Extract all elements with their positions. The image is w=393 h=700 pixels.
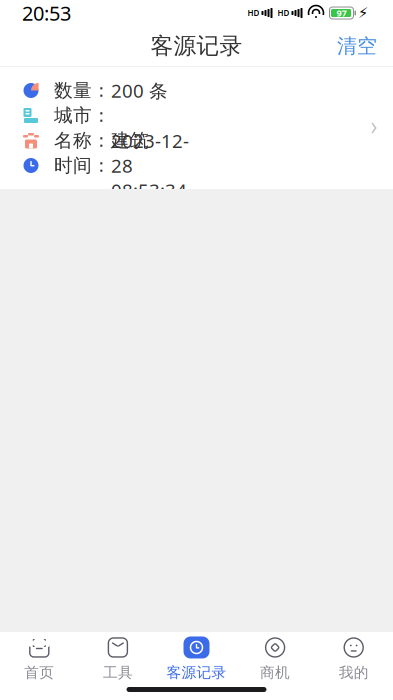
staticText: 2023-12-28 08:53:34 — [111, 128, 189, 203]
staticText: ⚡︎ — [358, 5, 368, 21]
staticText: 20:53 — [22, 0, 71, 26]
staticText: 工具 — [103, 663, 133, 681]
staticText: 首页 — [24, 663, 54, 681]
button[interactable]: 清空 — [321, 26, 393, 66]
staticText: HD — [277, 8, 289, 18]
staticText: 名称： — [54, 129, 111, 152]
staticText: 200 条 — [111, 78, 168, 103]
staticText: 清空 — [337, 34, 377, 58]
staticText: 97 — [336, 7, 346, 19]
button[interactable]: 首页 — [0, 628, 79, 687]
button[interactable]: 商机 — [236, 628, 314, 687]
staticText: 我的 — [339, 663, 369, 681]
button[interactable]: 工具 — [79, 628, 157, 687]
button[interactable]: 数量： — [0, 67, 393, 189]
staticText: HD — [247, 8, 259, 18]
staticText: 城市： — [54, 104, 111, 127]
staticText: 数量： — [54, 79, 111, 102]
button[interactable]: 客源记录 — [157, 628, 236, 687]
staticText: 客源记录 — [166, 663, 226, 681]
staticText: 时间： — [54, 154, 111, 177]
staticText: 客源记录 — [150, 32, 242, 60]
staticText: 商机 — [260, 663, 290, 681]
staticText: 建筑 — [111, 129, 149, 152]
button[interactable]: 我的 — [314, 628, 393, 687]
